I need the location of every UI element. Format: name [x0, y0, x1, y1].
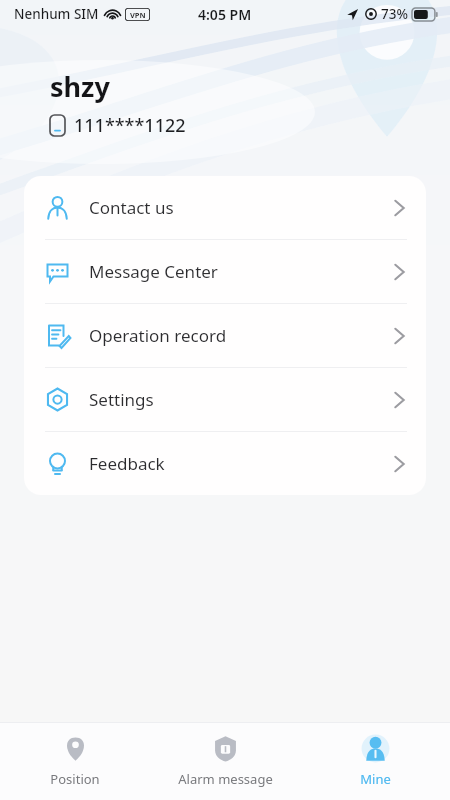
staticText: Feedback — [89, 452, 394, 475]
button[interactable]: Contact us — [24, 176, 426, 239]
button[interactable]: Mine — [300, 723, 450, 788]
other: Alarm message — [211, 734, 240, 763]
staticText: Position — [50, 770, 100, 788]
staticText: Alarm message — [178, 770, 273, 788]
staticText: Contact us — [89, 196, 394, 219]
staticText: 73% — [381, 5, 408, 23]
button[interactable]: Operation record — [24, 304, 426, 367]
staticText: Settings — [89, 388, 394, 411]
other: Mine — [361, 734, 390, 763]
other: Position — [61, 734, 90, 763]
staticText: 111****1122 — [74, 113, 186, 138]
button[interactable]: Settings — [24, 368, 426, 431]
button[interactable]: Message Center — [24, 240, 426, 303]
staticText: Operation record — [89, 324, 394, 347]
staticText: shzy — [50, 68, 110, 105]
staticText: Message Center — [89, 260, 394, 283]
button[interactable]: Position — [0, 723, 150, 788]
staticText: Mine — [360, 770, 391, 788]
staticText: VPN — [130, 10, 146, 20]
button[interactable]: Feedback — [24, 432, 426, 495]
staticText: Nenhum SIM — [14, 5, 99, 23]
staticText: 4:05 PM — [198, 5, 252, 24]
button[interactable]: Alarm message — [150, 723, 300, 788]
